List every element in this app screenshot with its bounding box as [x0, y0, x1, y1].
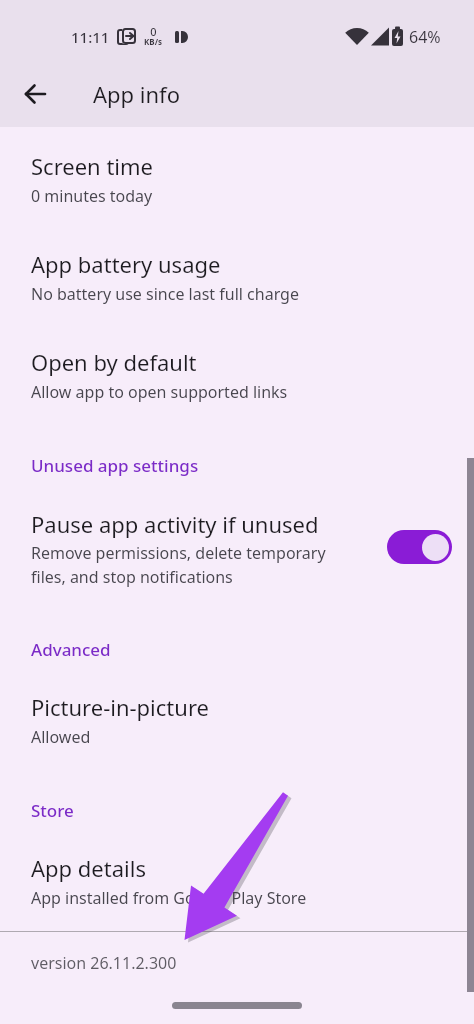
staticText: No battery use since last full charge: [31, 283, 299, 305]
button[interactable]: [0, 684, 474, 774]
button[interactable]: [0, 845, 474, 935]
staticText: App battery usage: [31, 249, 221, 279]
staticText: Unused app settings: [31, 454, 199, 477]
staticText: Allowed: [31, 726, 91, 748]
button[interactable]: [387, 530, 452, 564]
staticText: Screen time: [31, 151, 154, 181]
staticText: Picture-in-picture: [31, 692, 209, 722]
staticText: Pause app activity if unused: [31, 509, 319, 539]
staticText: 0: [150, 24, 157, 39]
button[interactable]: [0, 142, 474, 232]
staticText: Open by default: [31, 347, 197, 377]
button[interactable]: [0, 338, 474, 428]
staticText: 11:11: [71, 27, 110, 47]
button[interactable]: [0, 500, 474, 600]
staticText: App installed from Google Play Store: [31, 887, 307, 909]
staticText: App info: [93, 79, 180, 109]
staticText: Remove permissions, delete temporary fil…: [31, 542, 326, 588]
staticText: App details: [31, 853, 146, 883]
staticText: Allow app to open supported links: [31, 381, 288, 403]
staticText: 0 minutes today: [31, 185, 153, 207]
staticText: KB/s: [144, 36, 162, 47]
staticText: 64%: [409, 26, 441, 48]
staticText: version 26.11.2.300: [31, 952, 177, 974]
button[interactable]: [0, 240, 474, 330]
button[interactable]: [12, 70, 60, 118]
staticText: Store: [31, 799, 74, 822]
staticText: Advanced: [31, 638, 111, 661]
